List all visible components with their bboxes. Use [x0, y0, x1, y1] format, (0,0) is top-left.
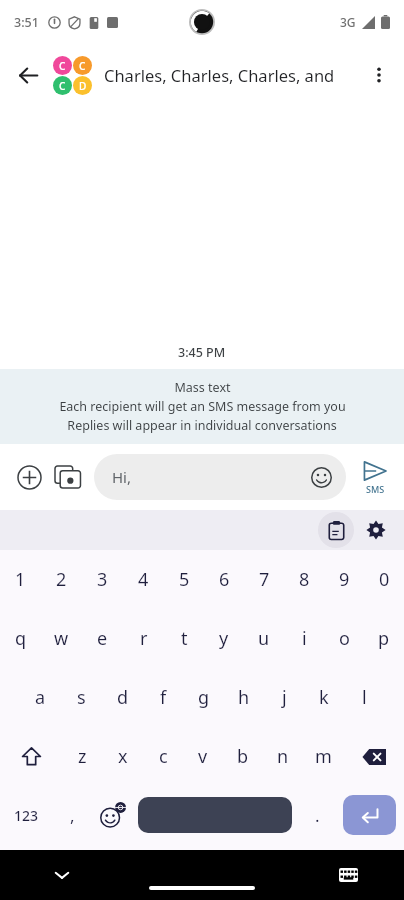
staticText: C — [59, 59, 66, 73]
button[interactable]: f — [143, 668, 184, 727]
button[interactable]: m — [303, 727, 343, 786]
staticText: 0 — [379, 567, 390, 592]
button[interactable]: More options — [358, 54, 400, 96]
button[interactable]: , — [53, 786, 91, 844]
staticText: a — [35, 685, 46, 710]
staticText: m — [315, 744, 332, 769]
staticText: z — [78, 744, 87, 769]
button[interactable]: Backspace — [343, 727, 404, 786]
button[interactable]: Shift — [0, 727, 62, 786]
button[interactable]: Clipboard — [318, 512, 354, 548]
button[interactable]: w — [41, 609, 82, 668]
button[interactable]: p — [364, 609, 404, 668]
staticText: q — [15, 626, 27, 651]
button[interactable]: 8 — [284, 550, 324, 609]
staticText: w — [54, 626, 69, 651]
button[interactable]: o — [324, 609, 364, 668]
button[interactable]: x — [103, 727, 143, 786]
button[interactable]: Hide keyboard — [42, 855, 82, 895]
button[interactable]: Hi, — [94, 454, 346, 500]
button[interactable]: v — [183, 727, 223, 786]
staticText: j — [282, 685, 287, 710]
button[interactable]: d — [102, 668, 143, 727]
button[interactable]: Gallery — [48, 457, 88, 497]
staticText: b — [237, 744, 249, 769]
button[interactable]: 2 — [41, 550, 82, 609]
button[interactable]: Emoji — [306, 462, 336, 492]
button[interactable]: c — [143, 727, 183, 786]
button[interactable]: 123 — [0, 786, 53, 844]
staticText: n — [277, 744, 289, 769]
button[interactable]: b — [223, 727, 263, 786]
staticText: f — [160, 685, 167, 710]
staticText: Hi, — [112, 467, 306, 487]
button[interactable]: Home — [149, 886, 255, 890]
button[interactable]: n — [263, 727, 303, 786]
staticText: , — [70, 804, 75, 827]
button[interactable]: z — [62, 727, 103, 786]
button[interactable]: s — [61, 668, 102, 727]
staticText: 7 — [259, 567, 270, 592]
button[interactable]: k — [304, 668, 344, 727]
button[interactable]: Add attachment — [10, 458, 48, 496]
staticText: Mass text — [174, 379, 231, 396]
button[interactable]: 1 — [0, 550, 41, 609]
staticText: 1 — [15, 567, 26, 592]
staticText: 3G — [340, 14, 356, 30]
staticText: r — [140, 626, 148, 651]
staticText: Each recipient will get an SMS message f… — [59, 398, 346, 415]
button[interactable]: g — [184, 668, 224, 727]
button[interactable]: y — [204, 609, 244, 668]
staticText: 8 — [299, 567, 310, 592]
button[interactable]: Charles, Charles, Charles, and 3… — [104, 64, 358, 86]
button[interactable]: Keyboard settings — [358, 512, 394, 548]
button[interactable]: Send SMS — [354, 459, 396, 495]
staticText: e — [97, 626, 108, 651]
button[interactable]: 7 — [244, 550, 284, 609]
staticText: l — [362, 685, 367, 710]
staticText: 5 — [179, 567, 190, 592]
button[interactable]: 5 — [164, 550, 204, 609]
button[interactable]: Switch keyboard — [328, 855, 368, 895]
button[interactable]: t — [164, 609, 204, 668]
staticText: h — [238, 685, 250, 710]
button[interactable]: Emoji and language — [91, 786, 134, 844]
staticText: Charles, Charles, Charles, and 3… — [104, 64, 358, 86]
staticText: p — [378, 626, 390, 651]
staticText: 3 — [97, 567, 108, 592]
staticText: x — [118, 744, 128, 769]
staticText: c — [159, 744, 168, 769]
button[interactable]: j — [264, 668, 304, 727]
staticText: 3:45 PM — [178, 344, 226, 361]
button[interactable]: Space — [138, 797, 292, 833]
staticText: y — [219, 626, 229, 651]
staticText: u — [258, 626, 270, 651]
button[interactable]: l — [344, 668, 384, 727]
staticText: v — [198, 744, 208, 769]
button[interactable]: 6 — [204, 550, 244, 609]
staticText: 4 — [138, 567, 149, 592]
button[interactable]: 0 — [364, 550, 404, 609]
staticText: Replies will appear in individual conver… — [67, 417, 337, 434]
button[interactable]: 3 — [82, 550, 123, 609]
staticText: o — [339, 626, 350, 651]
button[interactable]: q — [0, 609, 41, 668]
staticText: . — [315, 804, 320, 827]
staticText: d — [117, 685, 129, 710]
button[interactable]: i — [284, 609, 324, 668]
button[interactable]: r — [123, 609, 164, 668]
staticText: 2 — [56, 567, 67, 592]
button[interactable]: Enter — [343, 795, 396, 835]
staticText: 123 — [14, 806, 39, 825]
button[interactable]: 9 — [324, 550, 364, 609]
staticText: s — [77, 685, 86, 710]
button[interactable]: h — [224, 668, 264, 727]
button[interactable]: Back — [6, 53, 50, 97]
button[interactable]: a — [20, 668, 61, 727]
staticText: t — [181, 626, 188, 651]
button[interactable]: 4 — [123, 550, 164, 609]
button[interactable]: e — [82, 609, 123, 668]
staticText: 9 — [339, 567, 350, 592]
button[interactable]: . — [296, 786, 339, 844]
button[interactable]: u — [244, 609, 284, 668]
